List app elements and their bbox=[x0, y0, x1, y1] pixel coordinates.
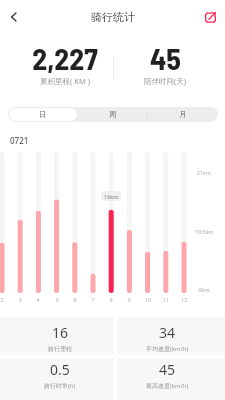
staticText: 7 bbox=[87, 296, 99, 303]
staticText: 最高速度(km/h) bbox=[146, 382, 189, 390]
button[interactable]: 0.5 bbox=[0, 360, 120, 398]
button[interactable]: Share bbox=[202, 9, 218, 25]
staticText: 周 bbox=[109, 110, 117, 119]
staticText: 骑行统计 bbox=[91, 10, 135, 24]
staticText: 0721 bbox=[10, 135, 29, 146]
staticText: 2,227 bbox=[32, 40, 98, 76]
staticText: 10 bbox=[142, 296, 154, 303]
staticText: 骑行里程 bbox=[48, 345, 72, 353]
staticText: 0km bbox=[189, 286, 219, 293]
staticText: 3 bbox=[14, 296, 26, 303]
button[interactable]: 日 bbox=[9, 108, 77, 121]
staticText: 11 bbox=[160, 296, 172, 303]
staticText: 0.5 bbox=[50, 360, 70, 379]
staticText: 10.5km bbox=[189, 228, 219, 235]
staticText: 9 bbox=[123, 296, 135, 303]
button[interactable]: 周 bbox=[79, 108, 147, 121]
staticText: 8 bbox=[105, 296, 117, 303]
staticText: 21km bbox=[189, 169, 219, 176]
staticText: 12 bbox=[178, 296, 190, 303]
staticText: 平均速度(km/h) bbox=[146, 345, 189, 353]
button[interactable]: 月 bbox=[149, 108, 217, 121]
staticText: 累积里程( KM ) bbox=[40, 76, 90, 86]
staticText: 陪伴时间(天) bbox=[144, 76, 186, 86]
staticText: 45 bbox=[150, 40, 181, 76]
staticText: 骑行时常(h) bbox=[44, 382, 76, 390]
staticText: 16km bbox=[104, 193, 119, 200]
staticText: 34 bbox=[159, 323, 176, 342]
button[interactable]: Back bbox=[2, 5, 26, 29]
staticText: 16 bbox=[52, 323, 69, 342]
staticText: 2 bbox=[0, 296, 8, 303]
staticText: 日 bbox=[39, 110, 47, 119]
staticText: 月 bbox=[179, 110, 187, 119]
button[interactable]: 45 bbox=[110, 360, 225, 398]
button[interactable]: 34 bbox=[110, 323, 225, 361]
staticText: 4 bbox=[32, 296, 44, 303]
button[interactable]: 16 bbox=[0, 323, 120, 361]
staticText: 5 bbox=[51, 296, 63, 303]
staticText: 45 bbox=[159, 360, 176, 379]
staticText: 6 bbox=[69, 296, 81, 303]
